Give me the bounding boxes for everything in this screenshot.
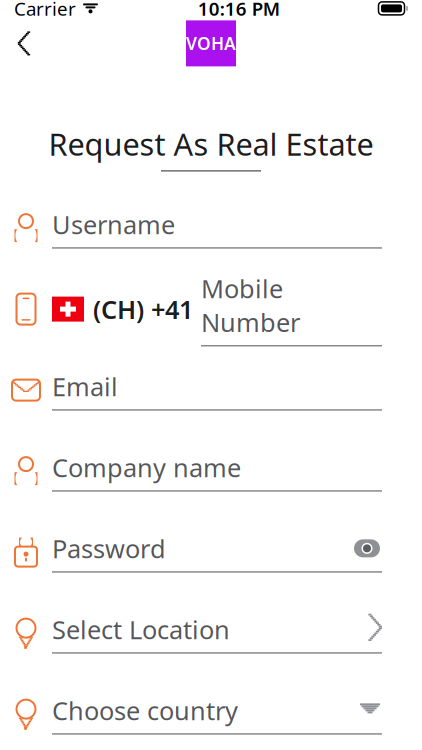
staticText: Mobile Number xyxy=(201,272,300,339)
staticText: 10:16 PM xyxy=(198,0,280,21)
button[interactable]: Password xyxy=(0,512,422,593)
staticText: Select Location xyxy=(52,612,230,646)
button[interactable]: (CH) +41 xyxy=(0,269,422,350)
button[interactable]: Company name xyxy=(0,431,422,512)
staticText: Request As Real Estate xyxy=(48,123,373,164)
staticText: Carrier xyxy=(14,0,76,21)
staticText: Choose country xyxy=(52,693,238,727)
button[interactable]: Username xyxy=(0,188,422,269)
staticText: Username xyxy=(52,207,175,241)
button[interactable]: Show password xyxy=(352,535,382,561)
staticText: Password xyxy=(52,531,166,565)
staticText: VOHA xyxy=(186,32,236,55)
button[interactable]: Email xyxy=(0,350,422,431)
staticText: Email xyxy=(52,369,118,403)
button[interactable]: Select Location xyxy=(0,593,422,674)
staticText: (CH) +41 xyxy=(93,292,193,326)
button[interactable]: Back xyxy=(2,21,46,65)
staticText: Company name xyxy=(52,450,241,484)
button[interactable]: Choose country xyxy=(0,674,422,750)
